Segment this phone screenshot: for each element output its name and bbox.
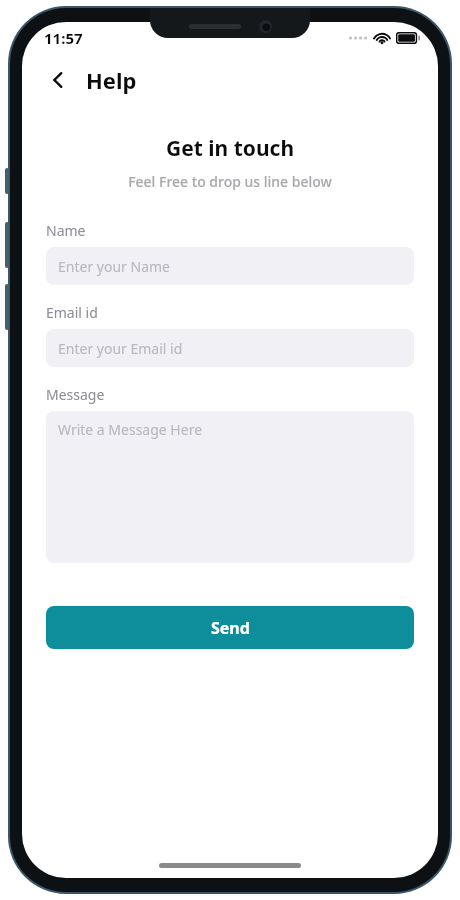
staticText: Write a Message Here bbox=[58, 420, 203, 439]
staticText: Send bbox=[211, 617, 250, 639]
staticText: Name bbox=[46, 221, 86, 240]
staticText: Email id bbox=[46, 303, 98, 322]
staticText: Get in touch bbox=[22, 134, 438, 163]
staticText: Enter your Name bbox=[58, 257, 170, 276]
staticText: Enter your Email id bbox=[58, 339, 183, 358]
staticText: Message bbox=[46, 385, 105, 404]
staticText: Feel Free to drop us line below bbox=[22, 172, 438, 191]
button[interactable]: Write a Message Here bbox=[46, 411, 414, 563]
staticText: 11:57 bbox=[44, 28, 83, 48]
button[interactable]: Enter your Name bbox=[46, 247, 414, 285]
button[interactable]: Enter your Email id bbox=[46, 329, 414, 367]
button[interactable]: Back bbox=[38, 60, 78, 100]
staticText: Help bbox=[86, 65, 137, 95]
button[interactable]: Send bbox=[46, 606, 414, 649]
